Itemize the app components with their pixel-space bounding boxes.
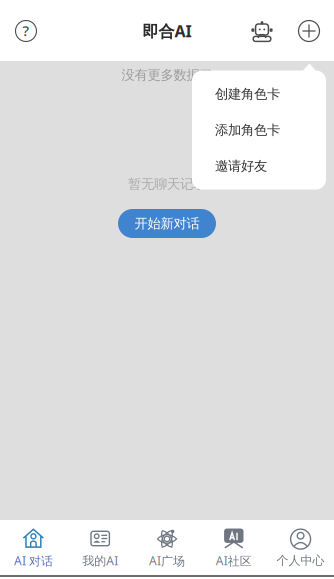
button[interactable]: 添加角色卡	[192, 112, 326, 148]
button[interactable]: 邀请好友	[192, 148, 326, 184]
staticText: AI社区	[216, 552, 252, 568]
button[interactable]: Help	[7, 12, 45, 50]
button[interactable]: AI 对话	[0, 519, 67, 575]
staticText: 创建角色卡	[215, 86, 280, 102]
staticText: ?	[22, 21, 29, 40]
staticText: 暂无聊天记录	[128, 176, 206, 192]
staticText: AI广场	[149, 552, 185, 568]
button[interactable]: 创建角色卡	[192, 76, 326, 112]
staticText: 个人中心	[277, 553, 325, 568]
button[interactable]: Add	[290, 12, 328, 50]
button[interactable]: AI广场	[134, 519, 200, 575]
staticText: 邀请好友	[215, 158, 267, 174]
staticText: 我的AI	[82, 552, 118, 568]
staticText: 添加角色卡	[215, 122, 280, 138]
button[interactable]: 我的AI	[67, 519, 134, 575]
button[interactable]: AI社区	[200, 519, 267, 575]
staticText: 开始新对话	[134, 215, 199, 232]
staticText: AI 对话	[14, 552, 53, 568]
staticText: 没有更多数据了	[121, 67, 212, 83]
button[interactable]: AI assistant	[243, 12, 281, 50]
staticText: 即合AI	[142, 20, 191, 42]
button[interactable]: 个人中心	[267, 519, 334, 575]
button[interactable]: 开始新对话	[118, 209, 216, 238]
